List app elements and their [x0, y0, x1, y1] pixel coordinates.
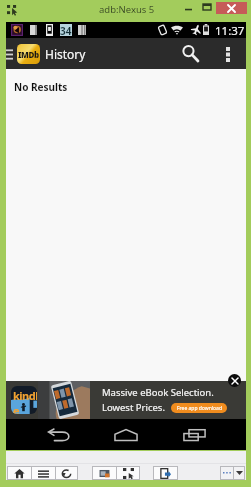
button[interactable]: Recent apps: [174, 419, 214, 450]
button[interactable]: Menu: [32, 467, 55, 479]
button[interactable]: Back: [56, 467, 77, 479]
staticText: History: [45, 46, 86, 62]
button[interactable]: Home: [8, 467, 31, 479]
button[interactable]: Export: [154, 467, 177, 479]
button[interactable]: Emulator menu: [7, 5, 18, 15]
button[interactable]: Close advertisement: [228, 374, 241, 387]
staticText: adb:Nexus 5: [99, 3, 155, 16]
button[interactable]: Back: [39, 419, 79, 450]
staticText: 34: [60, 24, 72, 36]
button[interactable]: More options: [216, 38, 240, 69]
button[interactable]: IMDb: [17, 44, 40, 64]
staticText: No Results: [14, 80, 68, 94]
staticText: kindle: [13, 388, 37, 414]
staticText: Free app download: [177, 405, 222, 412]
button[interactable]: Free app download: [171, 403, 227, 413]
button[interactable]: Screenshot: [93, 467, 116, 479]
button[interactable]: Open navigation drawer: [6, 38, 17, 69]
button[interactable]: Resize: [117, 467, 139, 479]
button[interactable]: Maximize: [197, 0, 217, 14]
button[interactable]: kindle: [6, 381, 246, 419]
button[interactable]: Home: [106, 419, 146, 450]
button[interactable]: More toolbar options: [221, 467, 244, 479]
staticText: Lowest Prices.: [102, 401, 165, 414]
staticText: Massive eBook Selection.: [102, 386, 214, 399]
button[interactable]: Minimize: [178, 0, 198, 14]
staticText: 11:37: [215, 23, 245, 39]
button[interactable]: Search: [174, 38, 206, 69]
button[interactable]: Close: [216, 2, 247, 14]
staticText: IMDb: [18, 49, 39, 60]
